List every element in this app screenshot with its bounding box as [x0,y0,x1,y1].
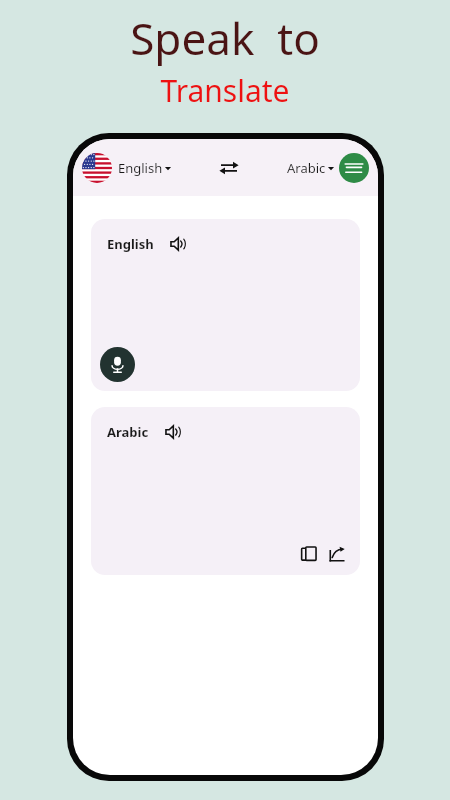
button[interactable]: Share translation [326,543,348,565]
button[interactable]: English [80,149,174,187]
staticText: Translate [160,70,290,111]
button[interactable]: Arabic [91,407,360,575]
staticText: Arabic [287,159,326,177]
staticText: English [118,159,163,177]
staticText: Arabic [107,423,149,441]
staticText: Speak to [130,8,320,68]
button[interactable]: Copy translation [298,543,320,565]
button[interactable]: Speak Arabic text [163,422,183,442]
button[interactable]: Arabic [285,149,371,187]
button[interactable]: Swap languages [212,151,246,185]
button[interactable]: English [91,219,360,391]
button[interactable]: Start voice input [100,347,135,382]
staticText: English [107,235,154,253]
button[interactable]: Speak English text [168,234,188,254]
